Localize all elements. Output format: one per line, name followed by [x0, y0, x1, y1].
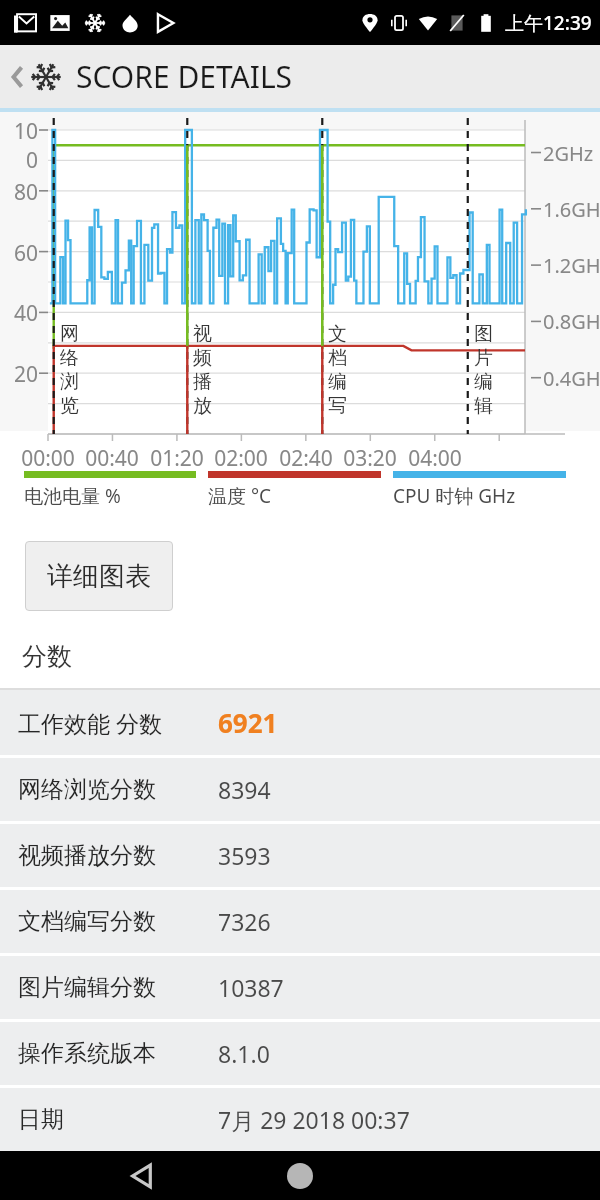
- staticText: 8.1.0: [218, 1038, 270, 1069]
- staticText: 1.2GHz: [543, 252, 600, 279]
- staticText: SCORE DETAILS: [76, 56, 293, 97]
- staticText: 辑: [474, 394, 493, 418]
- staticText: 图片编辑分数: [18, 973, 156, 1002]
- button[interactable]: 工作效能 分数: [0, 690, 600, 755]
- staticText: 0.4GHz: [543, 365, 600, 392]
- staticText: 20: [2, 360, 38, 389]
- button[interactable]: 视频播放分数: [0, 824, 600, 887]
- staticText: 40: [2, 299, 38, 328]
- staticText: 编: [328, 370, 347, 394]
- staticText: 02:00: [211, 444, 271, 473]
- staticText: 览: [60, 394, 79, 418]
- staticText: 放: [193, 394, 212, 418]
- button[interactable]: Back: [6, 55, 66, 99]
- staticText: 文档编写分数: [18, 907, 156, 936]
- staticText: 00:00: [18, 444, 78, 473]
- button[interactable]: Back: [120, 1153, 166, 1199]
- staticText: 80: [2, 178, 38, 207]
- staticText: 写: [328, 394, 347, 418]
- staticText: 浏: [60, 370, 79, 394]
- staticText: 02:40: [276, 444, 336, 473]
- staticText: 01:20: [147, 444, 207, 473]
- button[interactable]: 日期: [0, 1088, 600, 1151]
- staticText: 6921: [218, 705, 278, 740]
- staticText: 工作效能 分数: [18, 707, 162, 738]
- staticText: 分数: [22, 641, 72, 672]
- staticText: 上午12:39: [505, 10, 592, 36]
- button[interactable]: 网络浏览分数: [0, 758, 600, 821]
- staticText: 日期: [18, 1105, 64, 1134]
- button[interactable]: Home: [277, 1153, 323, 1199]
- staticText: 视: [193, 322, 212, 346]
- staticText: 100: [2, 117, 38, 175]
- staticText: 编: [474, 370, 493, 394]
- staticText: 网: [60, 322, 79, 346]
- staticText: 图: [474, 322, 493, 346]
- staticText: 04:00: [405, 444, 465, 473]
- staticText: 操作系统版本: [18, 1039, 156, 1068]
- staticText: 网络浏览分数: [18, 775, 156, 804]
- staticText: 片: [474, 346, 493, 370]
- staticText: 播: [193, 370, 212, 394]
- staticText: 档: [328, 346, 347, 370]
- staticText: 03:20: [340, 444, 400, 473]
- staticText: 络: [60, 346, 79, 370]
- staticText: 详细图表: [47, 560, 151, 593]
- button[interactable]: 图片编辑分数: [0, 956, 600, 1019]
- staticText: 2GHz: [543, 140, 594, 167]
- staticText: 8394: [218, 774, 271, 805]
- staticText: 00:40: [82, 444, 142, 473]
- staticText: 0.8GHz: [543, 308, 600, 335]
- staticText: 电池电量 %: [24, 483, 121, 509]
- staticText: 文: [328, 322, 347, 346]
- staticText: 60: [2, 239, 38, 268]
- button[interactable]: 文档编写分数: [0, 890, 600, 953]
- staticText: 温度 °C: [208, 483, 272, 509]
- staticText: 视频播放分数: [18, 841, 156, 870]
- button[interactable]: 详细图表: [25, 541, 173, 611]
- button[interactable]: 操作系统版本: [0, 1022, 600, 1085]
- staticText: 3593: [218, 840, 271, 871]
- staticText: 10387: [218, 972, 284, 1003]
- staticText: 7月 29 2018 00:37: [218, 1104, 410, 1135]
- staticText: 7326: [218, 906, 271, 937]
- staticText: 频: [193, 346, 212, 370]
- staticText: 1.6GHz: [543, 196, 600, 223]
- staticText: CPU 时钟 GHz: [393, 483, 516, 509]
